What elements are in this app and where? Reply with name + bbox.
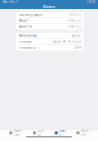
staticText: Apple M1 (8 Cores): [53, 40, 81, 43]
staticText: iPad13,4: [68, 25, 81, 28]
staticText: iOS 15.3: [69, 13, 81, 16]
staticText: Motherboard: [19, 34, 37, 37]
button[interactable]: Device: [54, 129, 67, 136]
staticText: Storage: [37, 129, 44, 136]
staticText: Processor ID: [19, 46, 36, 49]
staticText: Model ID: [19, 25, 32, 28]
button[interactable]: Storage: [32, 129, 45, 136]
staticText: ARM: [75, 46, 81, 49]
staticText: Operating System: [19, 13, 42, 16]
button[interactable]: Network: [75, 129, 90, 136]
staticText: Mon Feb 7: [3, 0, 18, 4]
staticText: Processor: [19, 40, 32, 43]
staticText: Model: [19, 19, 28, 22]
staticText: Device: [59, 129, 66, 136]
staticText: Apple: [72, 34, 81, 37]
staticText: Device: [43, 4, 55, 9]
staticText: iPad13,4: [68, 19, 81, 22]
staticText: Dashboard: [14, 129, 23, 136]
button[interactable]: Dashboard: [8, 129, 24, 136]
staticText: 100%: [87, 0, 95, 4]
staticText: Network: [81, 129, 89, 136]
